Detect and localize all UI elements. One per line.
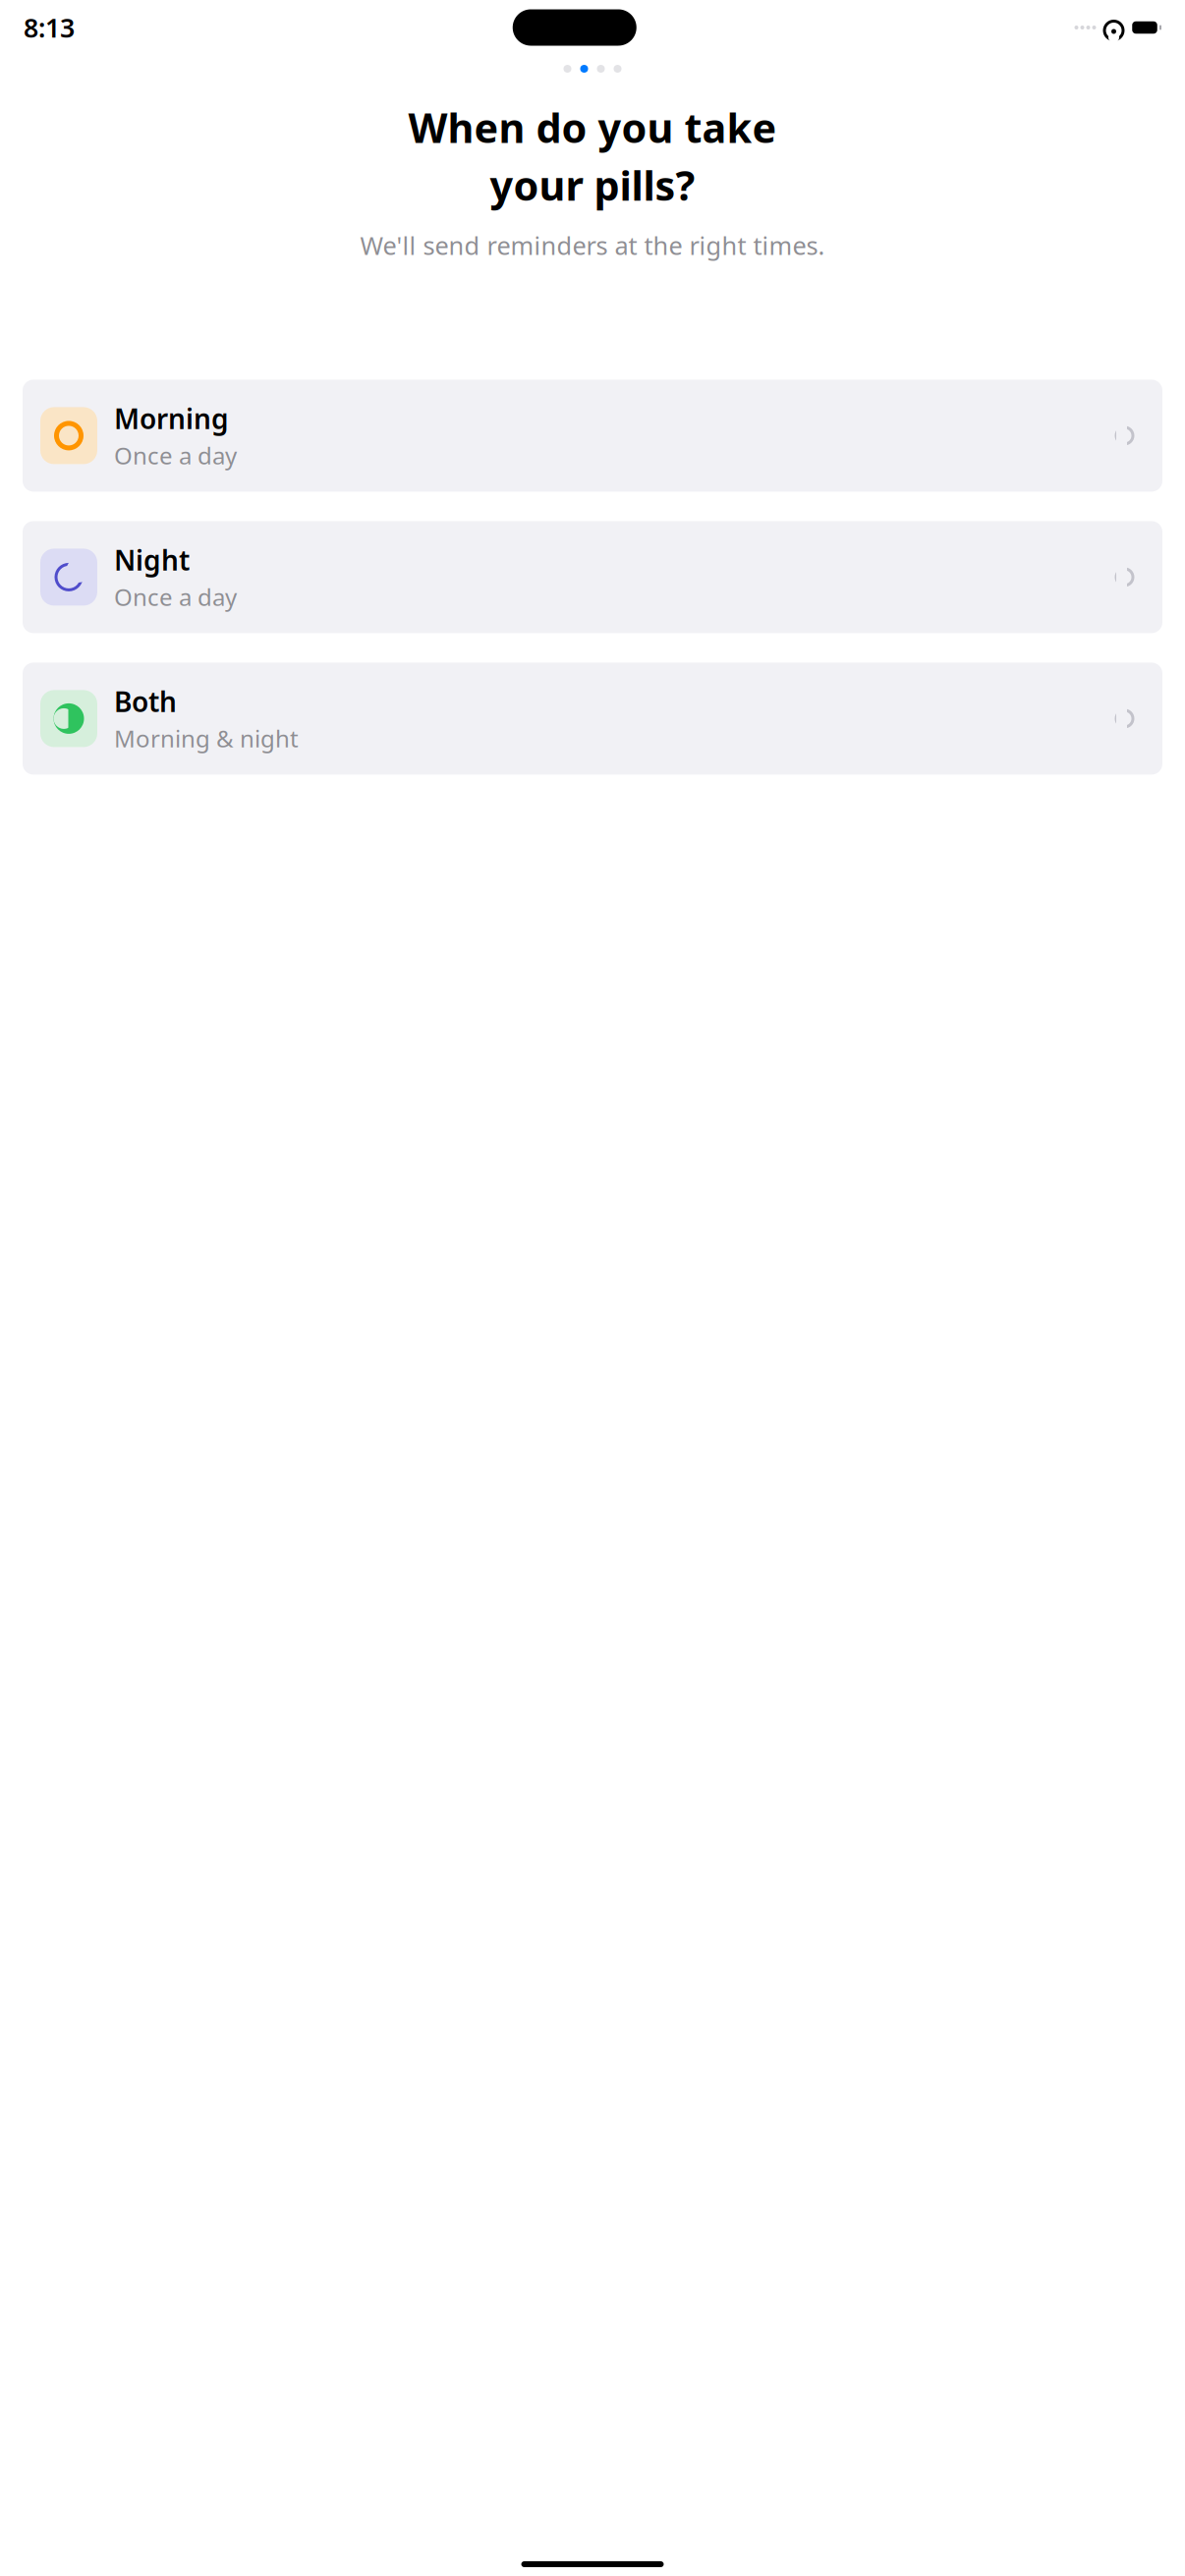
staticText: 8:13 xyxy=(24,10,75,45)
staticText: Once a day xyxy=(114,581,237,613)
staticText: Once a day xyxy=(114,440,237,471)
staticText: When do you take xyxy=(408,100,777,154)
button[interactable]: Both xyxy=(23,663,1162,775)
staticText: your pills? xyxy=(490,158,695,212)
staticText: Both xyxy=(114,683,177,720)
button[interactable]: Night xyxy=(23,521,1162,633)
staticText: Night xyxy=(114,542,190,578)
staticText: Morning xyxy=(114,400,229,437)
staticText: Morning & night xyxy=(114,723,299,754)
button[interactable]: Morning xyxy=(23,380,1162,492)
staticText: We'll send reminders at the right times. xyxy=(360,229,825,262)
